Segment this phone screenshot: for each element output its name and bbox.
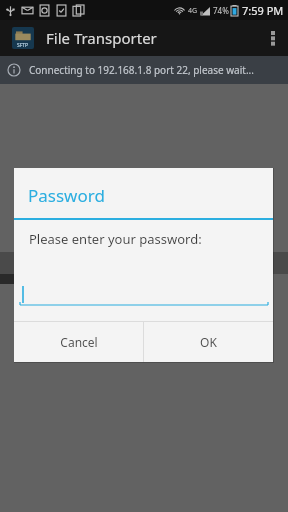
staticText: SFTP	[17, 42, 29, 49]
staticText: OK	[200, 334, 217, 350]
staticText: Cancel	[60, 334, 98, 350]
staticText: 4G	[188, 6, 198, 16]
button[interactable]: OK	[144, 322, 273, 362]
staticText: 74%	[213, 5, 229, 16]
staticText: Connecting to 192.168.1.8 port 22, pleas…	[29, 63, 254, 77]
staticText: Password	[28, 184, 105, 207]
button[interactable]: Password input field	[14, 258, 273, 321]
staticText: Please enter your password:	[29, 230, 202, 248]
staticText: File Transporter	[46, 28, 157, 48]
staticText: 7:59 PM	[242, 3, 284, 18]
button[interactable]: Cancel	[14, 322, 143, 362]
button[interactable]: More options	[258, 20, 288, 56]
